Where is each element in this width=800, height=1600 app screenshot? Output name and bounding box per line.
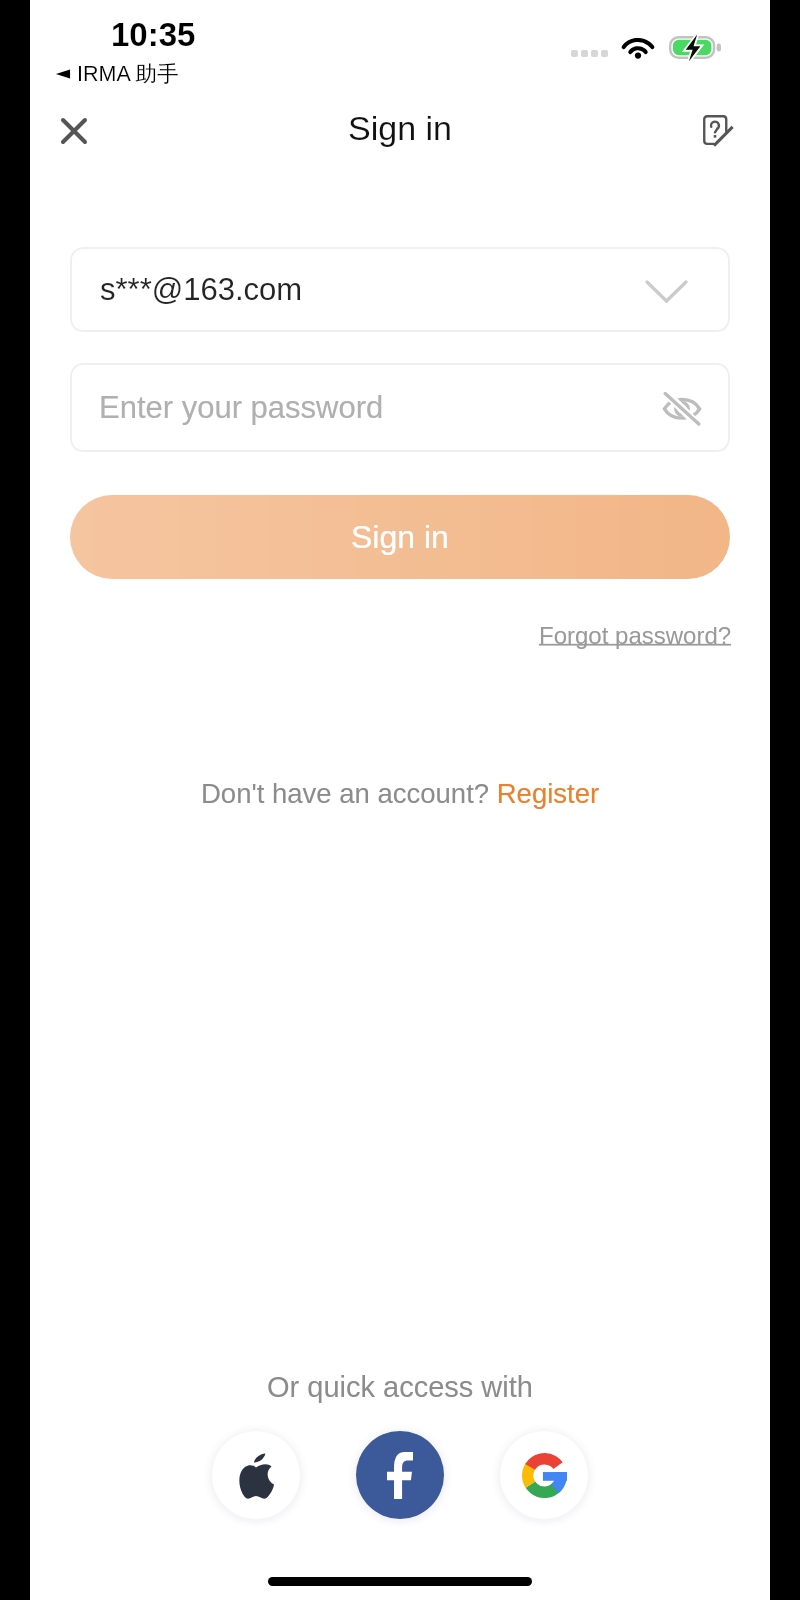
staticText: Forgot password? (539, 622, 732, 649)
button[interactable]: Forgot password? (539, 622, 732, 649)
button[interactable]: Choose account (642, 266, 690, 314)
button[interactable]: Show password (656, 382, 708, 434)
button[interactable]: Enter your password (70, 363, 730, 452)
button[interactable]: Don't have an account? Register (201, 778, 600, 809)
staticText: Don't have an account? Register (201, 778, 600, 809)
button[interactable]: Sign in with Facebook (349, 1424, 451, 1526)
button[interactable]: Sign in (70, 495, 730, 579)
staticText: 10:35 (111, 16, 196, 53)
button[interactable]: Sign in with Google (493, 1424, 595, 1526)
staticText: Or quick access with (267, 1371, 533, 1403)
staticText: Enter your password (99, 390, 384, 425)
staticText: s***@163.com (100, 272, 303, 307)
button[interactable]: Help (690, 106, 746, 162)
button[interactable]: Sign in with Apple (205, 1424, 307, 1526)
staticText: Sign in (348, 109, 452, 147)
button[interactable]: s***@163.com (70, 247, 730, 332)
button[interactable]: Close (46, 106, 102, 162)
staticText: IRMA 助手 (77, 60, 179, 87)
staticText: Sign in (351, 519, 449, 555)
